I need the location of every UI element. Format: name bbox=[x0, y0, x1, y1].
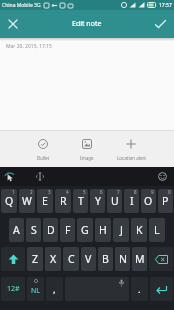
button[interactable] bbox=[33, 170, 46, 183]
button[interactable]: V bbox=[81, 247, 96, 271]
staticText: 5 bbox=[83, 189, 86, 195]
staticText: N bbox=[119, 252, 127, 266]
staticText: G bbox=[81, 223, 89, 237]
staticText: L bbox=[154, 223, 160, 237]
staticText: 8 bbox=[134, 189, 137, 195]
button[interactable]: Image bbox=[65, 131, 109, 167]
staticText: H bbox=[99, 223, 107, 237]
button[interactable]: H bbox=[95, 218, 111, 242]
staticText: P bbox=[162, 194, 169, 208]
button[interactable]: NL bbox=[27, 277, 44, 301]
button[interactable]: N bbox=[115, 247, 130, 271]
staticText: R bbox=[60, 194, 67, 208]
staticText: China Mobile 3G bbox=[2, 2, 41, 9]
button[interactable] bbox=[156, 170, 169, 183]
staticText: W bbox=[22, 194, 32, 208]
button[interactable]: I bbox=[124, 189, 139, 213]
button[interactable]: . bbox=[131, 277, 148, 301]
staticText: F bbox=[65, 223, 71, 237]
staticText: 1 bbox=[12, 189, 15, 195]
button[interactable]: T bbox=[73, 189, 88, 213]
button[interactable]: L bbox=[149, 218, 165, 242]
button[interactable]: Z bbox=[27, 247, 43, 271]
staticText: A bbox=[13, 223, 20, 237]
staticText: Y bbox=[95, 194, 101, 208]
staticText: M bbox=[135, 252, 145, 266]
staticText: 12# bbox=[7, 284, 20, 294]
staticText: 17:57 bbox=[159, 2, 172, 9]
button[interactable]: O bbox=[141, 189, 156, 213]
button[interactable] bbox=[152, 16, 168, 32]
button[interactable]: R bbox=[55, 189, 71, 213]
button[interactable]: Y bbox=[90, 189, 105, 213]
button[interactable] bbox=[5, 16, 21, 32]
staticText: , bbox=[53, 283, 56, 296]
button[interactable] bbox=[150, 277, 173, 301]
button[interactable]: M bbox=[132, 247, 147, 271]
button[interactable]: Location alert bbox=[109, 131, 153, 167]
button[interactable] bbox=[65, 277, 129, 301]
staticText: K bbox=[136, 223, 143, 237]
button[interactable]: E bbox=[37, 189, 53, 213]
button[interactable]: U bbox=[107, 189, 122, 213]
staticText: . bbox=[138, 283, 141, 296]
staticText: T bbox=[78, 194, 84, 208]
staticText: Bullet bbox=[37, 155, 50, 161]
button[interactable]: K bbox=[131, 218, 147, 242]
staticText: U bbox=[111, 194, 119, 208]
staticText: J bbox=[120, 223, 123, 237]
staticText: 0 bbox=[168, 189, 171, 195]
button[interactable]: W bbox=[19, 189, 35, 213]
staticText: 7 bbox=[117, 189, 120, 195]
staticText: E bbox=[42, 194, 48, 208]
staticText: Image bbox=[80, 155, 94, 161]
staticText: Edit note bbox=[72, 19, 102, 29]
staticText: Location alert bbox=[117, 155, 146, 161]
button[interactable] bbox=[3, 170, 16, 183]
button[interactable]: G bbox=[77, 218, 93, 242]
staticText: NL bbox=[31, 286, 40, 296]
button[interactable]: Bullet bbox=[21, 131, 65, 167]
button[interactable]: A bbox=[9, 218, 24, 242]
button[interactable]: D bbox=[43, 218, 58, 242]
staticText: 3 bbox=[48, 189, 51, 195]
staticText: O bbox=[144, 194, 153, 208]
staticText: X bbox=[50, 252, 57, 266]
staticText: B bbox=[102, 252, 109, 266]
staticText: I bbox=[130, 194, 134, 208]
button[interactable] bbox=[1, 247, 25, 271]
button[interactable]: F bbox=[60, 218, 75, 242]
button[interactable]: 12# bbox=[1, 277, 25, 301]
staticText: Mar 20, 2015, 17:15 bbox=[6, 43, 52, 50]
staticText: 6 bbox=[100, 189, 103, 195]
staticText: 4 bbox=[66, 189, 69, 195]
staticText: Z bbox=[32, 252, 39, 266]
button[interactable]: Q bbox=[1, 189, 17, 213]
staticText: S bbox=[31, 223, 37, 237]
staticText: V bbox=[85, 252, 92, 266]
button[interactable]: , bbox=[46, 277, 63, 301]
staticText: Q bbox=[5, 194, 14, 208]
button[interactable]: C bbox=[63, 247, 79, 271]
staticText: D bbox=[47, 223, 55, 237]
button[interactable]: P bbox=[158, 189, 173, 213]
button[interactable]: S bbox=[26, 218, 41, 242]
staticText: 2 bbox=[30, 189, 33, 195]
button[interactable] bbox=[149, 247, 173, 271]
button[interactable]: X bbox=[45, 247, 61, 271]
button[interactable]: J bbox=[113, 218, 129, 242]
staticText: 9 bbox=[151, 189, 154, 195]
staticText: C bbox=[68, 252, 75, 266]
button[interactable]: B bbox=[98, 247, 113, 271]
